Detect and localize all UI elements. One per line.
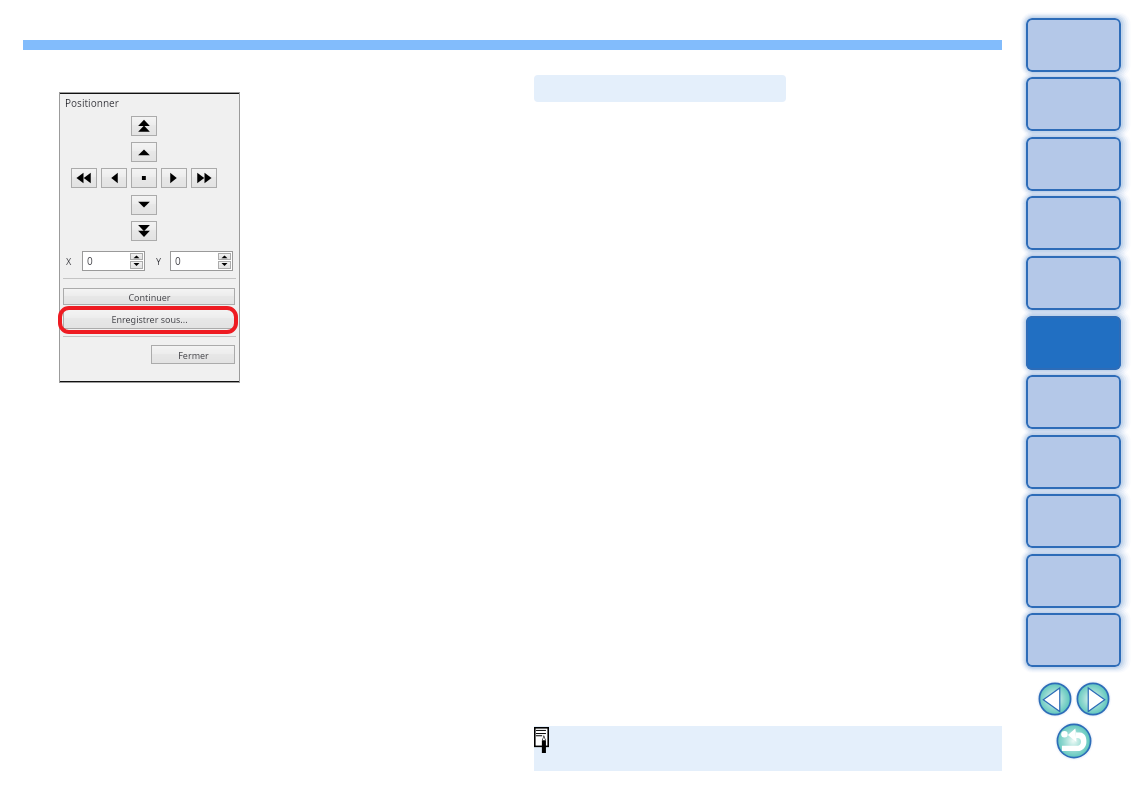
staticText: Continuer <box>128 291 171 303</box>
button[interactable]: 0 <box>82 251 145 271</box>
button[interactable]: Centre <box>131 168 157 188</box>
button[interactable]: 0 <box>170 251 233 271</box>
staticText: Enregistrer sous... <box>111 313 188 325</box>
button[interactable]: Move down fast <box>131 221 157 241</box>
button[interactable]: Move up <box>131 142 157 162</box>
button[interactable]: Move down <box>131 195 157 215</box>
staticText: X <box>66 255 72 267</box>
button[interactable]: Next page <box>1076 682 1110 716</box>
button[interactable]: Back <box>1056 723 1092 759</box>
button[interactable]: Chapter 5 <box>1026 256 1121 310</box>
button[interactable]: Move left fast <box>71 168 97 188</box>
button[interactable]: Chapter 2 <box>1026 77 1121 131</box>
button[interactable]: Fermer <box>151 345 235 364</box>
button[interactable]: Increase Y <box>218 253 231 260</box>
button[interactable]: Chapter 7 <box>1026 375 1121 429</box>
staticText: Fermer <box>178 349 209 361</box>
staticText: Y <box>156 255 162 267</box>
button[interactable]: Increase X <box>130 253 143 260</box>
button[interactable]: Continuer <box>63 288 235 305</box>
button[interactable]: Chapter 8 <box>1026 435 1121 489</box>
button[interactable]: Chapter 10 <box>1026 554 1121 608</box>
button[interactable]: Chapter 6 <box>1026 316 1121 370</box>
button[interactable]: Decrease Y <box>218 261 231 269</box>
button[interactable]: Move left <box>101 168 127 188</box>
staticText: 0 <box>87 254 93 268</box>
button[interactable]: Move up fast <box>131 116 157 136</box>
button[interactable]: Decrease X <box>130 261 143 269</box>
staticText: 0 <box>175 254 181 268</box>
button[interactable]: Chapter 4 <box>1026 196 1121 250</box>
button[interactable]: Previous page <box>1038 682 1072 716</box>
button[interactable]: Move right fast <box>191 168 217 188</box>
button[interactable]: Move right <box>161 168 187 188</box>
staticText: Positionner <box>65 96 119 110</box>
button[interactable]: Chapter 3 <box>1026 137 1121 191</box>
button[interactable]: Chapter 11 <box>1026 613 1121 667</box>
button[interactable]: Chapter 1 <box>1026 18 1121 72</box>
button[interactable]: Enregistrer sous... <box>63 309 235 329</box>
button[interactable]: Chapter 9 <box>1026 494 1121 548</box>
